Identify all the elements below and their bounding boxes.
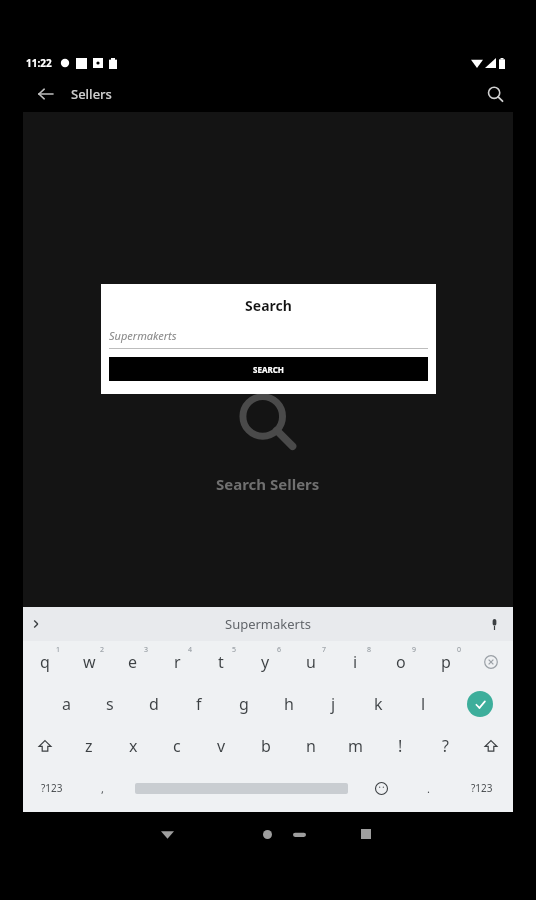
staticText: u <box>306 651 316 673</box>
button[interactable]: l <box>401 683 446 725</box>
button[interactable]: Assistant <box>286 821 312 847</box>
button[interactable]: Back <box>153 820 181 848</box>
button[interactable]: f <box>176 683 221 725</box>
button[interactable]: Space <box>125 767 357 809</box>
staticText: 11:22 <box>26 56 52 70</box>
staticText: n <box>306 735 316 757</box>
staticText: ! <box>398 735 403 757</box>
button[interactable]: b <box>243 725 288 767</box>
button[interactable]: u <box>288 641 333 683</box>
button[interactable]: Search <box>480 79 510 109</box>
staticText: 2 <box>100 645 105 655</box>
button[interactable]: Back <box>32 81 58 107</box>
button[interactable]: Recents <box>353 821 379 847</box>
staticText: , <box>101 781 104 796</box>
button[interactable]: ? <box>423 725 468 767</box>
staticText: Supermakerts <box>109 328 177 343</box>
staticText: a <box>62 693 71 715</box>
staticText: 3 <box>144 645 149 655</box>
button[interactable]: j <box>311 683 356 725</box>
button[interactable]: n <box>288 725 333 767</box>
staticText: ?123 <box>41 781 63 795</box>
staticText: b <box>261 735 271 757</box>
staticText: 4 <box>188 645 193 655</box>
staticText: y <box>261 651 270 673</box>
staticText: r <box>174 651 181 673</box>
staticText: 1 <box>56 645 61 655</box>
button[interactable]: More suggestions <box>25 613 47 635</box>
button[interactable]: v <box>199 725 243 767</box>
button[interactable]: k <box>356 683 401 725</box>
button[interactable]: x <box>111 725 155 767</box>
button[interactable]: Shift <box>468 725 513 767</box>
button[interactable]: g <box>221 683 266 725</box>
staticText: v <box>217 735 226 757</box>
button[interactable]: a <box>44 683 88 725</box>
button[interactable]: d <box>132 683 176 725</box>
staticText: z <box>85 735 93 757</box>
staticText: j <box>331 693 336 715</box>
staticText: q <box>40 651 50 673</box>
button[interactable]: SEARCH <box>109 357 428 381</box>
staticText: ? <box>442 735 449 757</box>
button[interactable]: Backspace <box>468 641 513 683</box>
button[interactable]: ?123 <box>451 767 513 809</box>
staticText: 0 <box>457 645 462 655</box>
button[interactable]: e <box>111 641 155 683</box>
staticText: i <box>353 651 358 673</box>
button[interactable]: Voice input <box>483 613 505 635</box>
staticText: h <box>284 693 294 715</box>
staticText: 8 <box>367 645 372 655</box>
staticText: o <box>396 651 406 673</box>
staticText: 6 <box>277 645 282 655</box>
staticText: x <box>129 735 138 757</box>
staticText: 7 <box>322 645 327 655</box>
staticText: f <box>196 693 202 715</box>
staticText: ?123 <box>471 781 493 795</box>
staticText: Search Sellers <box>216 474 320 494</box>
staticText: SEARCH <box>253 364 284 375</box>
button[interactable]: Home <box>254 821 280 847</box>
button[interactable]: m <box>333 725 378 767</box>
button[interactable]: s <box>88 683 132 725</box>
staticText: c <box>173 735 181 757</box>
button[interactable]: h <box>266 683 311 725</box>
staticText: p <box>441 651 451 673</box>
button[interactable]: y <box>243 641 288 683</box>
staticText: m <box>348 735 363 757</box>
button[interactable]: , <box>80 767 125 809</box>
staticText: w <box>83 651 96 673</box>
staticText: Search <box>101 296 436 315</box>
staticText: 5 <box>232 645 237 655</box>
staticText: d <box>149 693 159 715</box>
button[interactable]: . <box>406 767 451 809</box>
staticText: Sellers <box>71 85 112 103</box>
staticText: l <box>421 693 426 715</box>
staticText: t <box>218 651 224 673</box>
button[interactable]: r <box>155 641 199 683</box>
button[interactable]: Enter <box>446 683 513 725</box>
staticText: e <box>128 651 138 673</box>
button[interactable]: i <box>333 641 378 683</box>
button[interactable]: ! <box>378 725 423 767</box>
button[interactable]: Emoji <box>357 767 406 809</box>
staticText: s <box>106 693 114 715</box>
staticText: . <box>427 781 430 796</box>
staticText: 9 <box>412 645 417 655</box>
button[interactable]: o <box>378 641 423 683</box>
button[interactable]: t <box>199 641 243 683</box>
staticText: g <box>239 693 249 715</box>
button[interactable]: w <box>67 641 111 683</box>
button[interactable]: Shift <box>23 725 67 767</box>
staticText: k <box>374 693 383 715</box>
button[interactable]: ?123 <box>23 767 80 809</box>
button[interactable]: p <box>423 641 468 683</box>
button[interactable]: c <box>155 725 199 767</box>
button[interactable]: q <box>23 641 67 683</box>
staticText: Supermakerts <box>225 615 311 633</box>
button[interactable]: z <box>67 725 111 767</box>
